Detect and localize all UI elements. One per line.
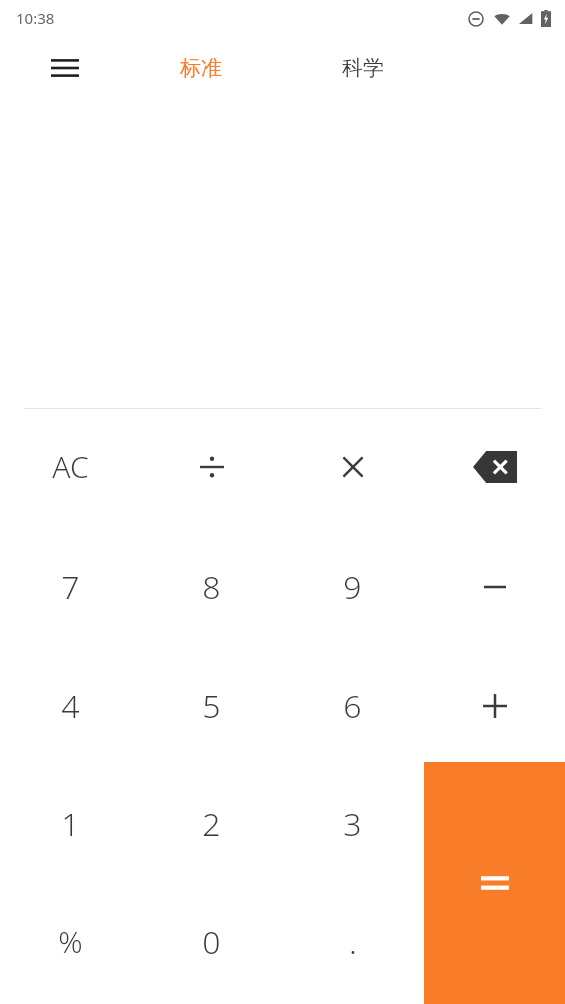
button[interactable]: . (282, 882, 423, 1001)
staticText: 7 (61, 565, 80, 609)
button[interactable]: 1 (0, 764, 141, 883)
button[interactable]: 8 (141, 527, 282, 646)
staticText: 2 (202, 802, 221, 846)
staticText: 5 (202, 684, 221, 728)
button[interactable]: 5 (141, 646, 282, 765)
staticText: 0 (202, 920, 221, 964)
button[interactable] (282, 407, 423, 526)
button[interactable]: 3 (282, 764, 423, 883)
button[interactable]: Menu (41, 44, 89, 92)
staticText: 1 (61, 802, 80, 846)
staticText: 8 (202, 565, 221, 609)
button[interactable]: 2 (141, 764, 282, 883)
staticText: 6 (343, 684, 362, 728)
button[interactable] (424, 646, 565, 765)
button[interactable]: 0 (141, 882, 282, 1001)
staticText: 4 (61, 684, 80, 728)
staticText: 标准 (180, 55, 222, 81)
staticText: % (58, 921, 83, 962)
button[interactable]: 4 (0, 646, 141, 765)
button[interactable]: Equals (424, 762, 565, 1004)
button[interactable]: 6 (282, 646, 423, 765)
staticText: 科学 (342, 55, 384, 81)
button[interactable]: Backspace (424, 407, 565, 526)
staticText: 10:38 (16, 8, 55, 28)
button[interactable]: 9 (282, 527, 423, 646)
button[interactable] (424, 527, 565, 646)
staticText: . (349, 920, 357, 964)
staticText: AC (52, 446, 89, 487)
button[interactable]: 7 (0, 527, 141, 646)
staticText: 3 (343, 802, 362, 846)
button[interactable]: 标准 (161, 36, 241, 100)
button[interactable]: AC (0, 407, 141, 526)
staticText: 9 (343, 565, 362, 609)
button[interactable]: 科学 (323, 36, 403, 100)
button[interactable] (141, 407, 282, 526)
button[interactable]: % (0, 882, 141, 1001)
